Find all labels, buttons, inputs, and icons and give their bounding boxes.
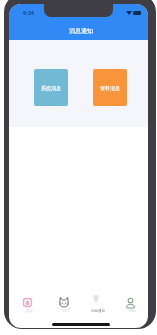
staticText: 资料消息	[100, 85, 120, 91]
button[interactable]: 资料消息	[93, 69, 127, 106]
staticText: 宠物	[62, 309, 69, 313]
staticText: 首页	[26, 309, 33, 313]
button[interactable]: 消息通知	[78, 291, 113, 316]
staticText: 我的	[129, 309, 136, 313]
staticText: 9:34	[23, 9, 34, 16]
staticText: 消息通知	[91, 309, 105, 313]
staticText: 消息通知	[69, 27, 93, 35]
button[interactable]: 宠物	[46, 291, 81, 316]
button[interactable]: 首页	[10, 291, 44, 316]
staticText: 系统消息	[41, 85, 61, 91]
button[interactable]: 我的	[113, 291, 148, 316]
button[interactable]: 系统消息	[34, 69, 68, 106]
